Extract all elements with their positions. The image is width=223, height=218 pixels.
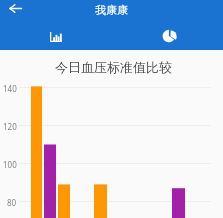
button[interactable]: Pie chart [111, 22, 223, 50]
button[interactable]: Back [3, 0, 28, 19]
staticText: 120 [3, 121, 17, 132]
button[interactable]: Bar chart [0, 22, 111, 50]
staticText: 我康康 [95, 3, 128, 17]
staticText: 100 [3, 159, 17, 170]
staticText: 今日血压标准值比较 [55, 59, 172, 75]
staticText: 140 [3, 83, 17, 94]
staticText: 80 [7, 197, 17, 208]
